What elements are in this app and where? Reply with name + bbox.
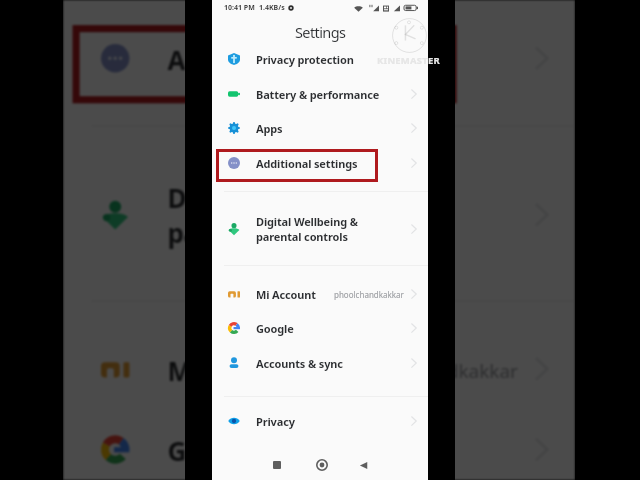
button[interactable]: Digital Wellbeing & xyxy=(212,205,428,253)
staticText: Settings xyxy=(295,22,346,42)
staticText: Apps xyxy=(256,121,283,136)
staticText: 1.4KB/s xyxy=(259,3,285,13)
staticText: Additional settings xyxy=(167,42,409,77)
staticText: parental controls xyxy=(256,229,348,244)
button[interactable]: Privacy protection xyxy=(212,42,428,76)
staticText: Accounts & sync xyxy=(256,356,343,371)
staticText: parental controls xyxy=(167,215,385,250)
staticText: Battery & performance xyxy=(256,87,380,102)
staticText: phoolchandkakkar xyxy=(352,357,518,383)
button[interactable]: Additional settings xyxy=(63,18,575,99)
button[interactable]: Mi Account xyxy=(63,329,575,409)
staticText: Mi Account xyxy=(256,287,316,302)
button[interactable]: Apps xyxy=(212,111,428,145)
button[interactable]: Recent apps xyxy=(262,450,292,480)
button[interactable]: Back xyxy=(348,450,378,480)
staticText: 10:41 PM xyxy=(224,3,255,13)
button[interactable]: Accounts & sync xyxy=(212,346,428,380)
button[interactable]: Privacy xyxy=(212,404,428,438)
staticText: Google xyxy=(167,433,257,468)
staticText: Digital Wellbeing & xyxy=(256,214,358,229)
staticText: Additional settings xyxy=(256,156,358,171)
button[interactable]: Google xyxy=(63,409,575,480)
staticText: Mi Account xyxy=(167,352,310,388)
button[interactable]: Google xyxy=(212,311,428,345)
staticText: Digital Wellbeing & xyxy=(167,179,409,215)
staticText: Google xyxy=(256,321,294,336)
button[interactable]: Home xyxy=(307,450,337,480)
staticText: KINEMASTER xyxy=(377,54,440,67)
button[interactable]: Digital Wellbeing & xyxy=(63,158,575,272)
staticText: Privacy xyxy=(256,414,295,429)
button[interactable]: Mi Account xyxy=(212,277,428,311)
staticText: phoolchandkakkar xyxy=(334,289,404,300)
button[interactable]: Battery & performance xyxy=(212,77,428,111)
staticText: Privacy protection xyxy=(256,52,354,67)
button[interactable]: Apps xyxy=(63,0,575,16)
button[interactable]: Additional settings xyxy=(212,146,428,180)
